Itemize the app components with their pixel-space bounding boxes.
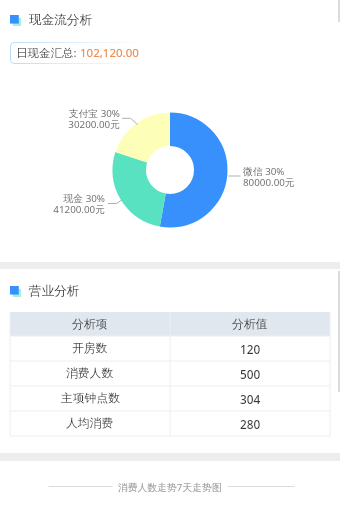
- staticText: 分析值: [232, 317, 268, 332]
- staticText: 消费人数: [66, 366, 114, 381]
- button[interactable]: 营业分析: [10, 283, 80, 299]
- staticText: 微信 30% 80000.00元: [243, 165, 340, 189]
- staticText: 304: [240, 391, 261, 407]
- staticText: 日现金汇总:: [16, 45, 80, 61]
- staticText: 500: [240, 366, 261, 382]
- staticText: 人均消费: [66, 416, 114, 431]
- button[interactable]: 现金流分析: [10, 12, 92, 28]
- button[interactable]: 日现金汇总:: [16, 42, 139, 64]
- staticText: 主项钟点数: [61, 391, 120, 406]
- staticText: 支付宝 30% 30200.00元: [20, 107, 120, 131]
- staticText: 280: [240, 416, 261, 432]
- button[interactable]: 消费人数: [10, 361, 330, 386]
- staticText: 102,120.00: [80, 45, 139, 61]
- button[interactable]: 人均消费: [10, 411, 330, 436]
- staticText: 消费人数走势7天走势图: [118, 481, 222, 494]
- button[interactable]: 开房数: [10, 336, 330, 361]
- staticText: 120: [240, 341, 261, 357]
- staticText: 现金 30% 41200.00元: [5, 192, 105, 216]
- staticText: 开房数: [72, 341, 108, 356]
- staticText: 营业分析: [29, 283, 80, 299]
- staticText: 现金流分析: [29, 12, 92, 28]
- staticText: 分析项: [72, 317, 108, 332]
- button[interactable]: 主项钟点数: [10, 386, 330, 411]
